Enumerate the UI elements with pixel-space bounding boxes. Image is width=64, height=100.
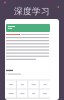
button[interactable]: 深度学习 [0,0,64,17]
staticText: 深度学习 [14,6,50,17]
